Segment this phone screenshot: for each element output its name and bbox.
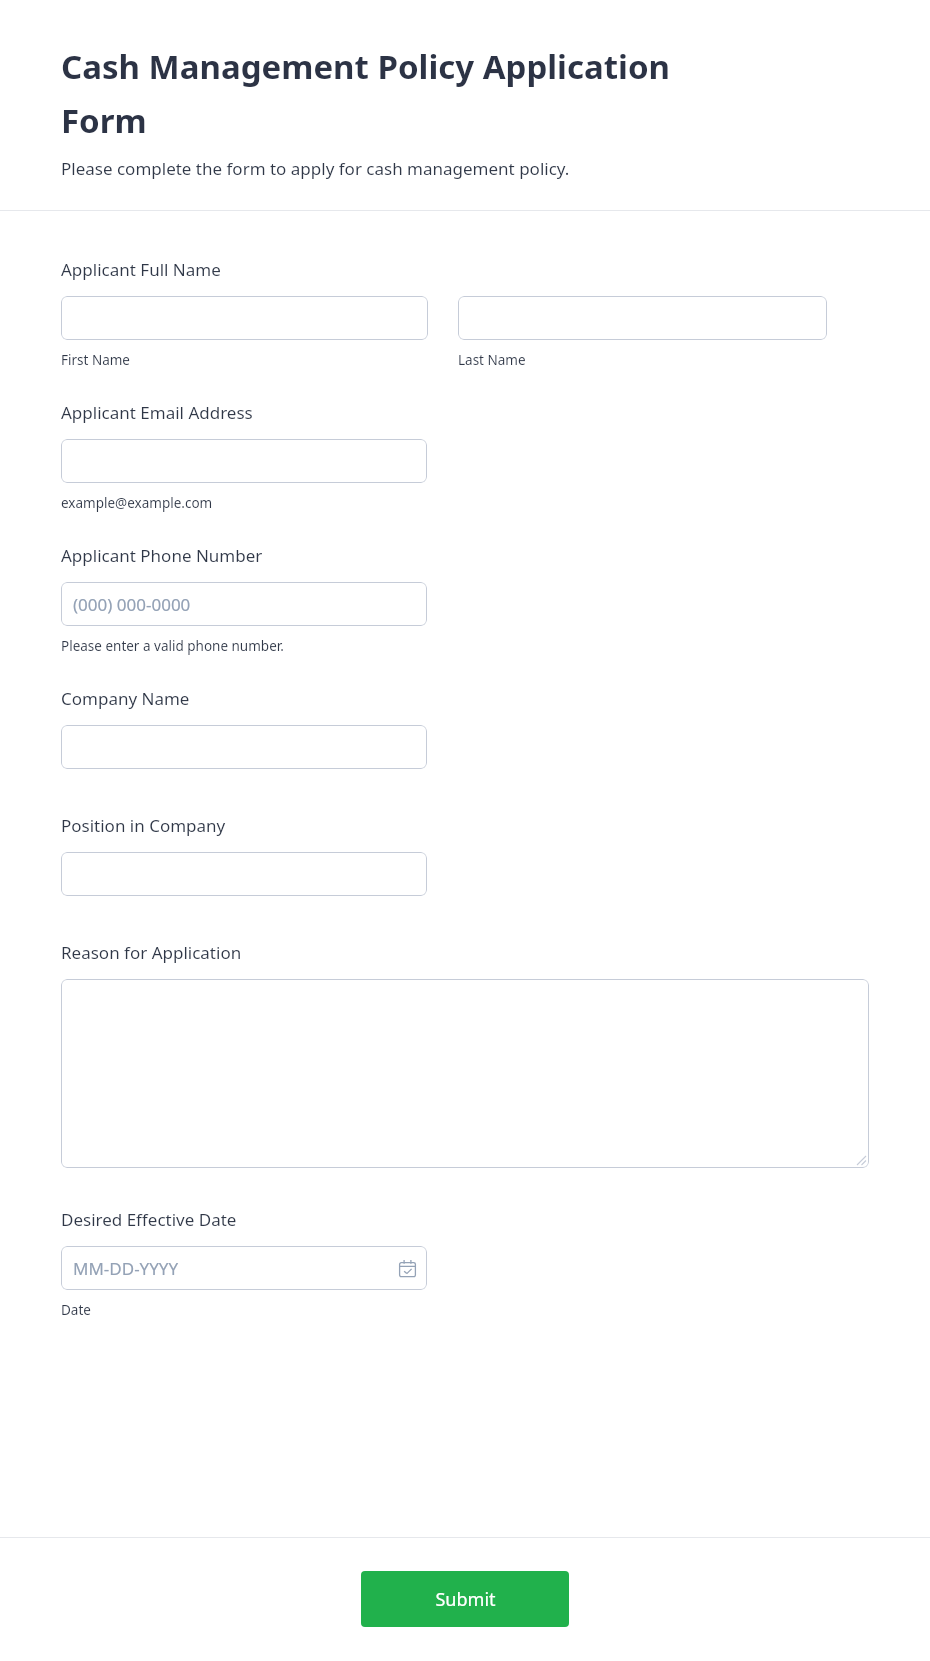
staticText: First Name [61, 351, 130, 369]
button[interactable]: MM-DD-YYYY [61, 1246, 427, 1290]
staticText: Company Name [61, 687, 190, 710]
staticText: Position in Company [61, 814, 226, 837]
button[interactable] [61, 296, 428, 340]
staticText: Date [61, 1301, 91, 1319]
button[interactable] [61, 439, 427, 483]
staticText: Submit [435, 1587, 496, 1612]
button[interactable] [61, 979, 869, 1168]
button[interactable]: Submit [361, 1571, 569, 1627]
staticText: Reason for Application [61, 941, 242, 964]
button[interactable] [61, 725, 427, 769]
staticText: (000) 000-0000 [73, 593, 191, 616]
staticText: example@example.com [61, 494, 213, 512]
button[interactable]: (000) 000-0000 [61, 582, 427, 626]
staticText: Please complete the form to apply for ca… [61, 157, 570, 180]
staticText: Please enter a valid phone number. [61, 637, 284, 655]
staticText: Desired Effective Date [61, 1208, 237, 1231]
button[interactable]: Open calendar [399, 1260, 416, 1277]
staticText: Applicant Email Address [61, 401, 253, 424]
button[interactable] [458, 296, 827, 340]
staticText: Last Name [458, 351, 526, 369]
staticText: Applicant Full Name [61, 258, 221, 281]
button[interactable] [61, 852, 427, 896]
staticText: MM-DD-YYYY [73, 1257, 179, 1280]
staticText: Applicant Phone Number [61, 544, 263, 567]
staticText: Cash Management Policy Application Form [61, 44, 761, 143]
